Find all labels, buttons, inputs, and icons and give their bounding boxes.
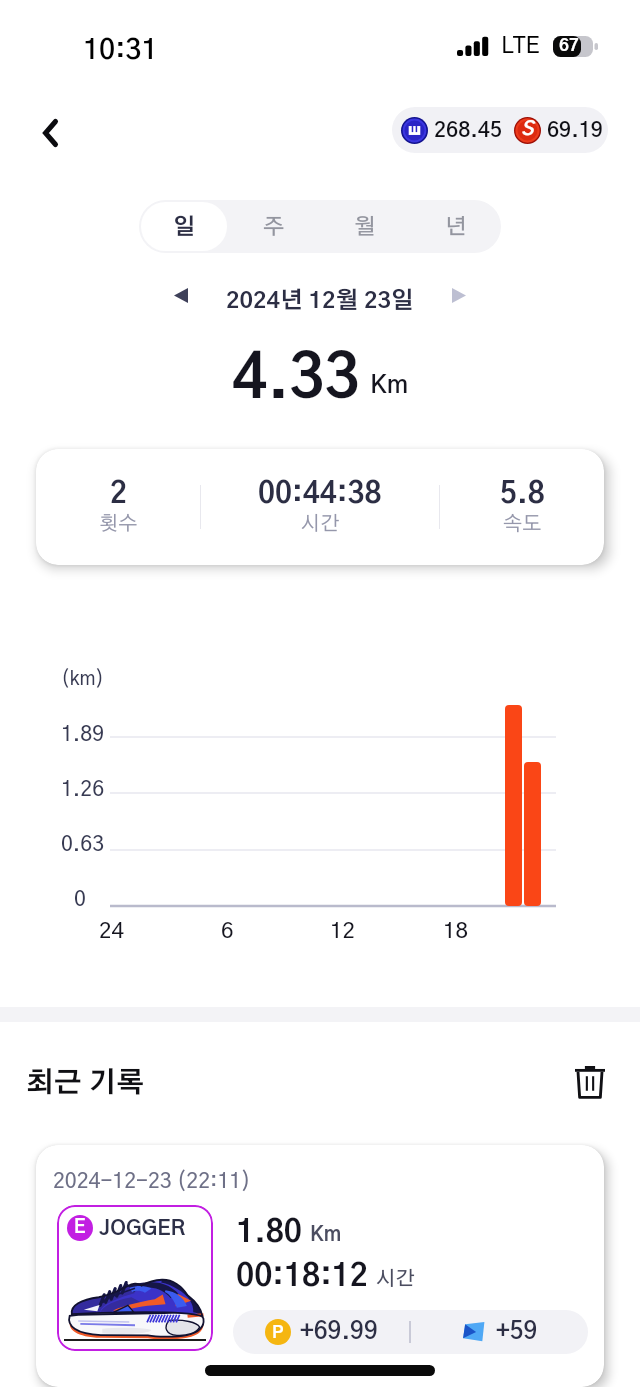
staticText: 년: [445, 216, 467, 238]
button[interactable]: 년: [412, 202, 499, 251]
button[interactable]: P: [233, 1310, 588, 1354]
staticText: 속도: [503, 514, 542, 534]
staticText: 24: [99, 920, 124, 942]
button[interactable]: 주: [231, 202, 317, 251]
button[interactable]: Delete records: [566, 1058, 614, 1106]
button[interactable]: Previous day: [159, 273, 203, 317]
staticText: LTE: [501, 35, 540, 58]
staticText: 6: [221, 920, 234, 942]
staticText: Km: [370, 373, 409, 398]
button[interactable]: 268.45: [392, 107, 608, 153]
button[interactable]: 2024-12-23 (22:11): [36, 1145, 604, 1387]
button[interactable]: Next day: [437, 273, 481, 317]
staticText: 00:44:38: [258, 480, 382, 509]
staticText: 월: [354, 216, 376, 238]
staticText: 268.45: [434, 120, 502, 141]
staticText: 0.63: [61, 834, 105, 855]
staticText: (km): [61, 670, 105, 689]
staticText: +69.99: [300, 1320, 378, 1344]
staticText: S: [521, 120, 534, 139]
button[interactable]: Back: [26, 109, 74, 157]
staticText: 69.19: [547, 120, 603, 141]
staticText: 1.26: [61, 779, 105, 800]
staticText: 시간: [376, 1269, 415, 1289]
staticText: 최근 기록: [26, 1070, 145, 1098]
staticText: Km: [310, 1225, 342, 1245]
staticText: 일: [173, 216, 195, 238]
staticText: 시간: [301, 514, 340, 534]
staticText: 2024년 12월 23일: [226, 290, 414, 313]
staticText: JOGGER: [99, 1218, 186, 1239]
staticText: 주: [263, 216, 285, 238]
staticText: 5.8: [500, 480, 545, 509]
staticText: 1.89: [61, 724, 105, 745]
staticText: 18: [443, 920, 468, 942]
staticText: 00:18:12: [236, 1261, 368, 1292]
staticText: 1.80: [236, 1217, 302, 1248]
staticText: +59: [496, 1320, 538, 1344]
staticText: 0: [74, 889, 86, 910]
staticText: 10:31: [83, 37, 158, 65]
staticText: 12: [330, 920, 355, 942]
staticText: E: [74, 1219, 86, 1237]
staticText: 4.33: [232, 350, 360, 410]
button[interactable]: 일: [141, 202, 227, 251]
staticText: P: [272, 1324, 284, 1341]
staticText: 2024-12-23 (22:11): [53, 1171, 251, 1192]
staticText: 67: [559, 37, 579, 54]
staticText: 횟수: [99, 514, 138, 534]
staticText: 2: [110, 480, 127, 509]
button[interactable]: 월: [321, 202, 408, 251]
